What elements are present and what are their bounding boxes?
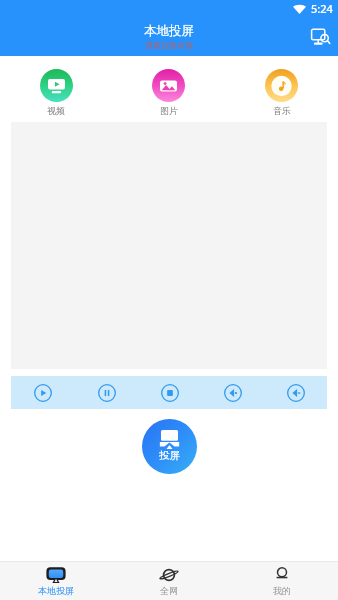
staticText: 搜索连接设备: [145, 40, 193, 50]
staticText: 全网: [160, 585, 178, 596]
button[interactable]: Volume up: [201, 376, 264, 409]
staticText: 5:24: [311, 1, 333, 16]
button[interactable]: Search devices: [308, 24, 334, 50]
button[interactable]: Pause: [75, 376, 138, 409]
staticText: 图片: [160, 105, 178, 116]
staticText: 视频: [47, 105, 65, 116]
button[interactable]: Volume down: [264, 376, 327, 409]
button[interactable]: 本地投屏: [0, 562, 112, 596]
staticText: 投屏: [159, 449, 180, 462]
button[interactable]: 图片: [112, 69, 225, 116]
button[interactable]: Play: [11, 376, 75, 409]
button[interactable]: 我的: [225, 562, 338, 596]
button[interactable]: 全网: [112, 562, 225, 596]
staticText: 我的: [273, 585, 291, 596]
staticText: 本地投屏: [144, 23, 194, 39]
staticText: 音乐: [273, 105, 291, 116]
button[interactable]: 视频: [0, 69, 112, 116]
button[interactable]: 音乐: [225, 69, 338, 116]
button[interactable]: Stop: [138, 376, 201, 409]
staticText: 本地投屏: [38, 585, 74, 596]
button[interactable]: 投屏: [142, 419, 197, 474]
